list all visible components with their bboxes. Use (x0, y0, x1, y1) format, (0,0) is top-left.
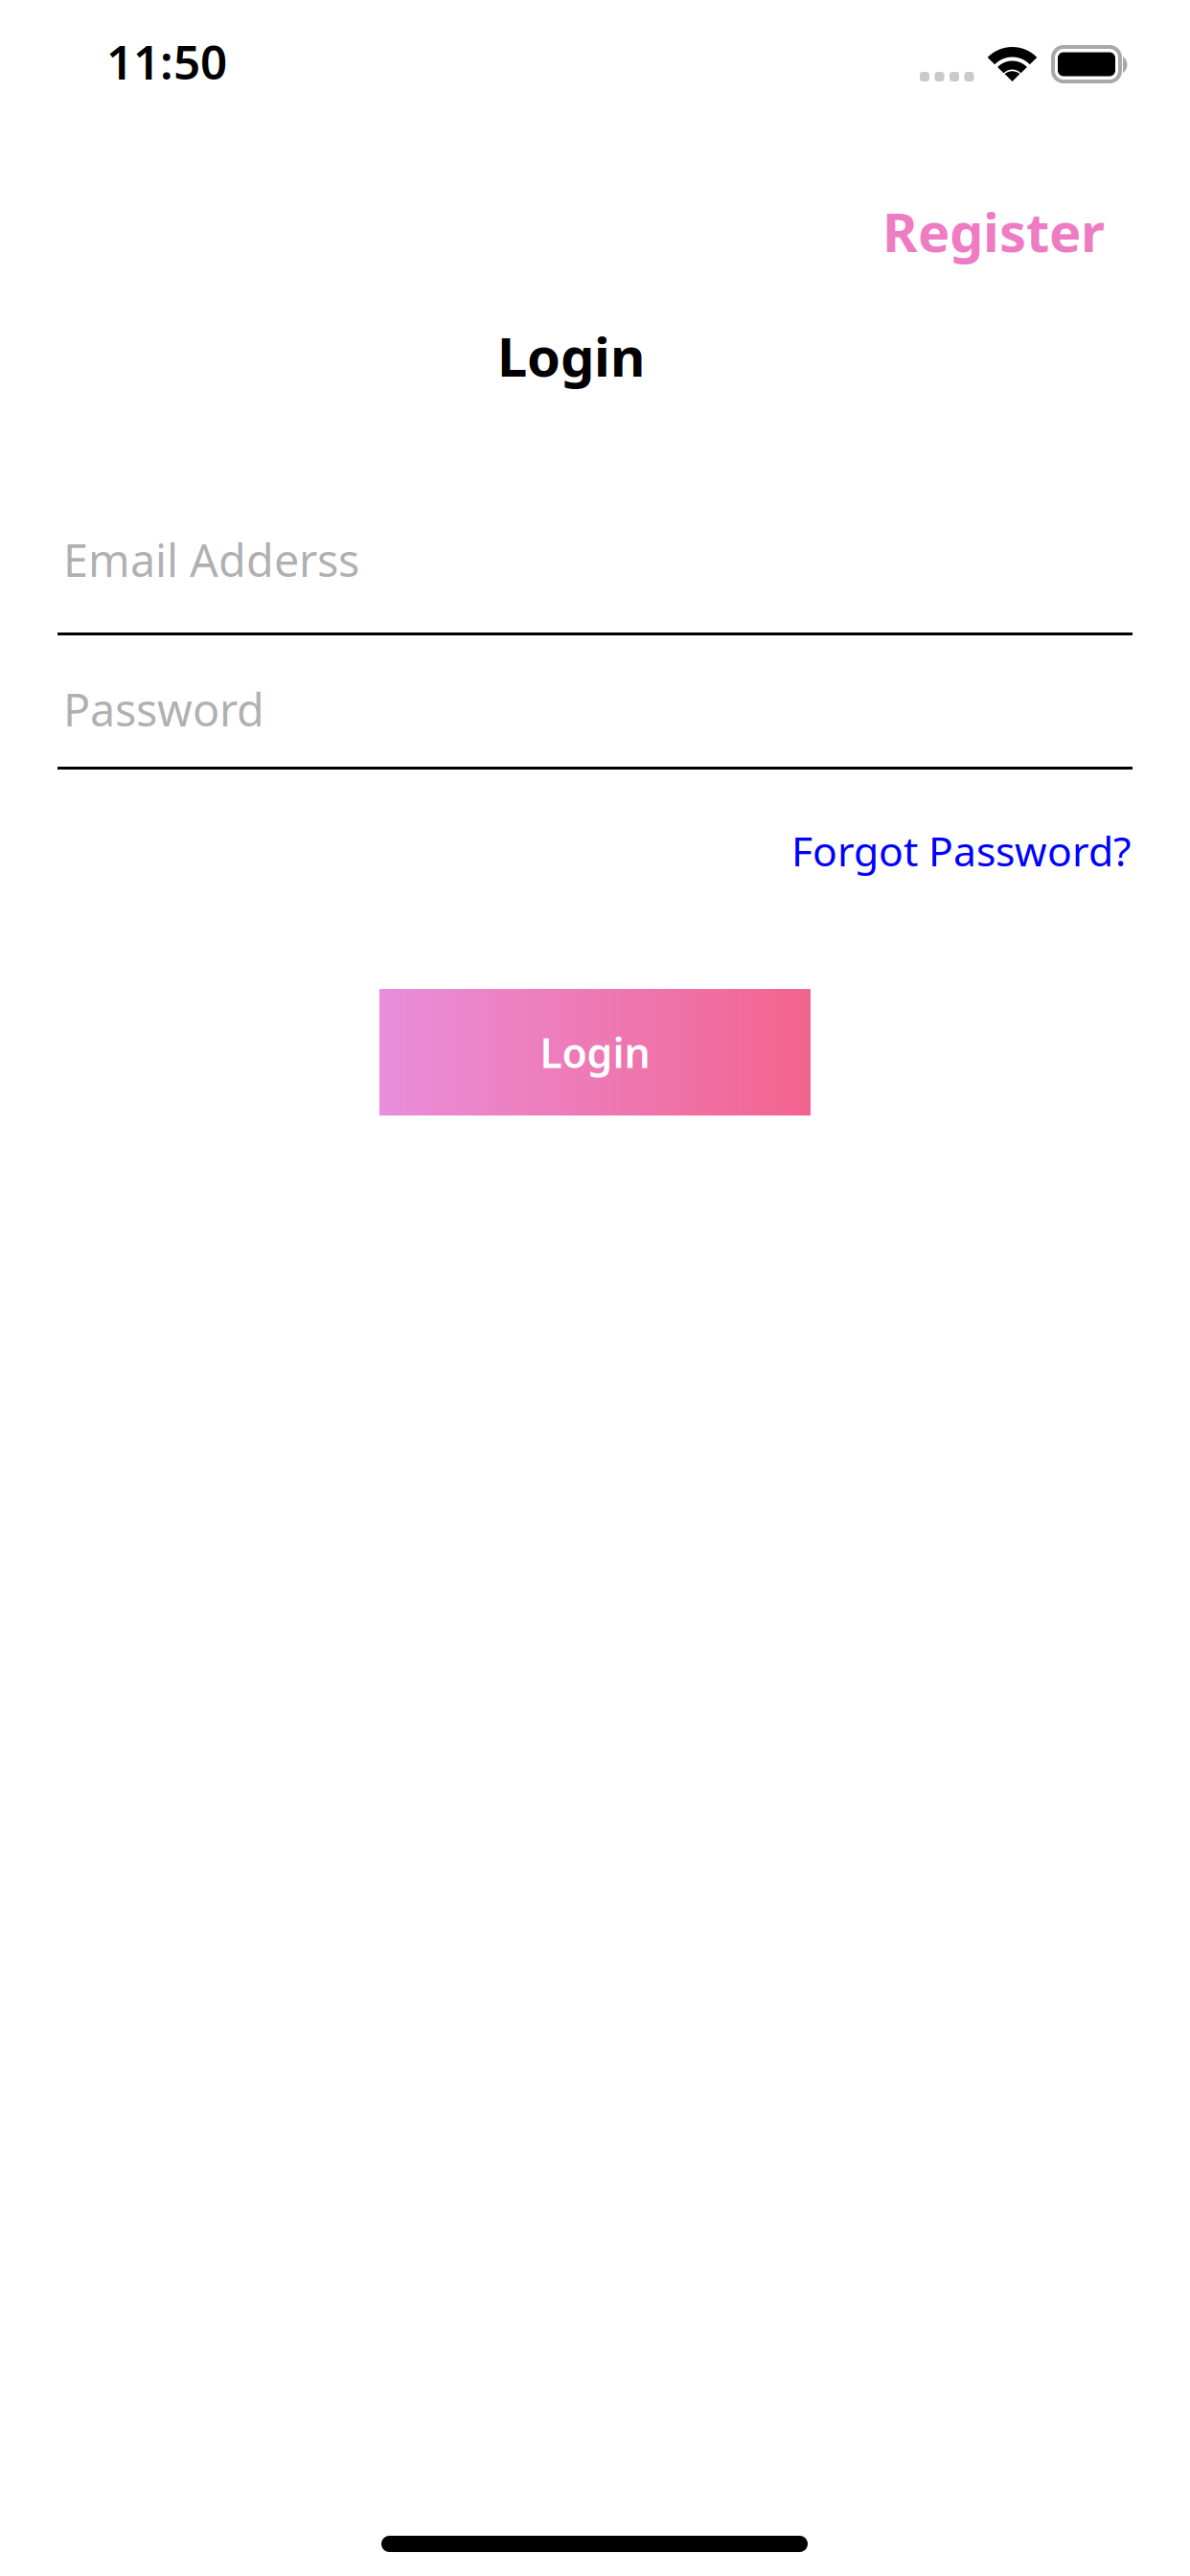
button[interactable]: Register (863, 180, 1124, 282)
staticText: Register (882, 195, 1105, 267)
staticText: Email Adderss (63, 530, 359, 589)
staticText: 11:50 (106, 30, 227, 92)
button[interactable]: Forgot Password? (778, 812, 1145, 889)
staticText: Login (540, 1025, 650, 1079)
button[interactable]: Email Adderss (57, 517, 1133, 635)
staticText: Forgot Password? (791, 823, 1132, 878)
staticText: Password (63, 679, 264, 739)
button[interactable]: Password (57, 652, 1133, 770)
staticText: Login (497, 320, 645, 391)
button[interactable]: Login (379, 989, 811, 1115)
